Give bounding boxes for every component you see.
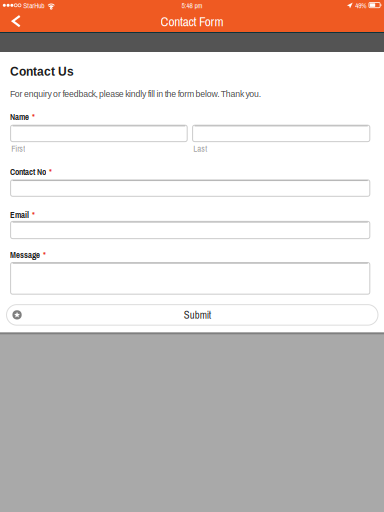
staticText: First xyxy=(11,143,25,155)
staticText: * xyxy=(43,249,46,261)
staticText: * xyxy=(49,166,52,178)
staticText: Message xyxy=(10,249,40,261)
staticText: StarHub xyxy=(23,1,44,11)
staticText: Last xyxy=(193,143,207,155)
staticText: For enquiry or feedback, please kindly f… xyxy=(10,89,261,99)
button[interactable]: Submit xyxy=(6,305,378,325)
staticText: Contact Form xyxy=(161,12,223,30)
staticText: * xyxy=(32,111,35,123)
staticText: 5:48 pm xyxy=(181,1,202,11)
staticText: Email xyxy=(10,209,29,221)
staticText: Contact No xyxy=(10,166,46,178)
staticText: Submit xyxy=(184,308,211,322)
staticText: 49% xyxy=(355,1,366,11)
staticText: Name xyxy=(10,111,29,123)
button[interactable]: Back xyxy=(2,14,28,32)
staticText: Contact Us xyxy=(10,65,74,78)
staticText: * xyxy=(32,209,35,221)
